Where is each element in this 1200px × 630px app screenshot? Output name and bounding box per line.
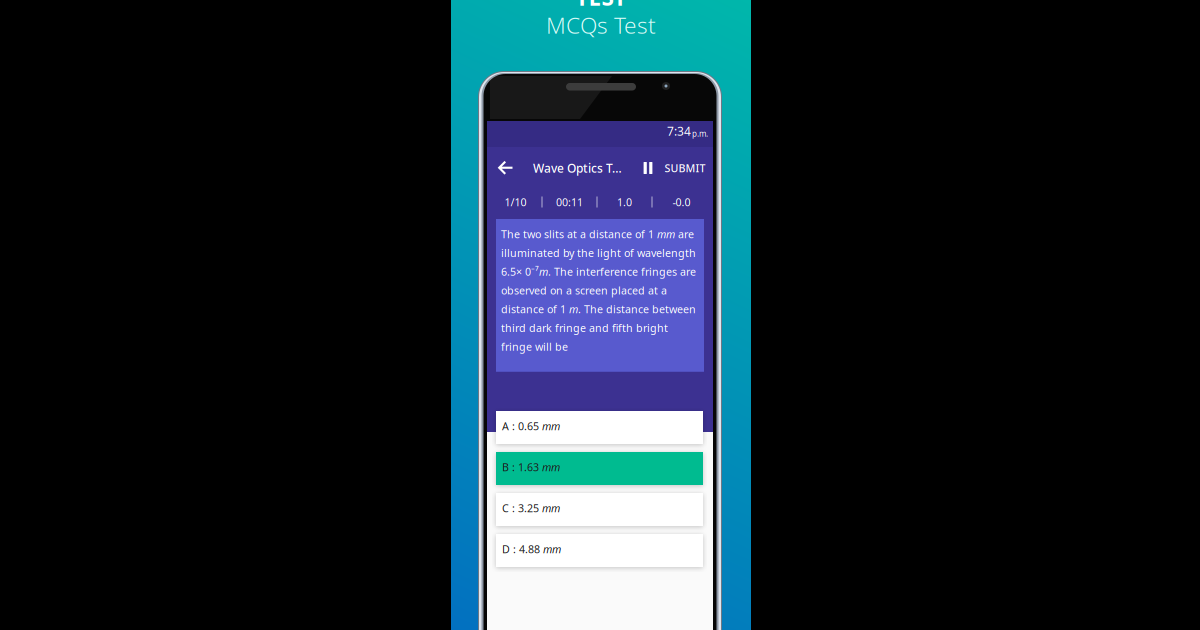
staticText: MCQs Test — [546, 10, 656, 40]
button[interactable]: A : 0.65 mm — [496, 411, 703, 444]
staticText: 1.0 — [617, 195, 632, 209]
staticText: 7:34 — [667, 123, 691, 139]
staticText: 00:11 — [556, 195, 583, 209]
button[interactable]: SUBMIT — [659, 147, 711, 189]
staticText: Wave Optics T… — [533, 160, 622, 176]
staticText: D : 4.88 mm — [502, 542, 561, 556]
staticText: 1/10 — [504, 195, 526, 209]
button[interactable]: B : 1.63 mm — [496, 452, 703, 485]
staticText: SUBMIT — [664, 161, 705, 175]
staticText: The two slits at a distance of 1 mm are … — [501, 227, 696, 354]
staticText: TEST — [575, 0, 626, 12]
staticText: p.m. — [692, 128, 708, 139]
staticText: -0.0 — [672, 195, 690, 209]
button[interactable]: Pause test — [637, 147, 659, 189]
staticText: C : 3.25 mm — [502, 501, 560, 515]
button[interactable]: C : 3.25 mm — [496, 493, 703, 526]
button[interactable]: D : 4.88 mm — [496, 534, 703, 567]
button[interactable]: Back — [489, 147, 521, 189]
staticText: B : 1.63 mm — [502, 460, 560, 474]
staticText: A : 0.65 mm — [502, 419, 560, 433]
